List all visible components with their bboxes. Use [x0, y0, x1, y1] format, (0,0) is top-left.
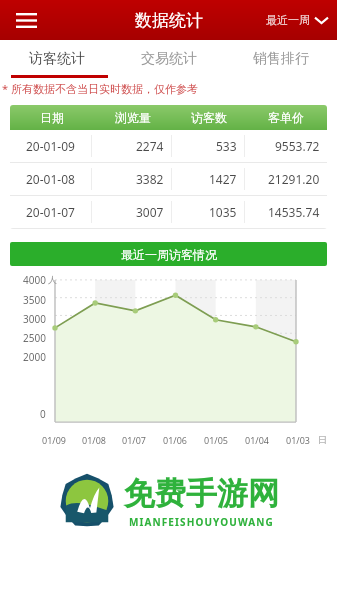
button[interactable]: 最近一周 [266, 13, 328, 27]
button[interactable]: 20-01-08 [10, 163, 327, 195]
staticText: 最近一周访客情况 [121, 247, 217, 262]
staticText: 访客统计 [29, 50, 85, 68]
staticText: 交易统计 [141, 50, 197, 68]
staticText: 2000 [23, 350, 46, 364]
staticText: 数据统计 [135, 10, 203, 31]
staticText: 浏览量 [115, 110, 151, 125]
staticText: 1427 [209, 171, 237, 187]
staticText: 01/04 [245, 434, 269, 446]
staticText: 20-01-09 [26, 138, 75, 154]
staticText: 日 [318, 434, 327, 445]
staticText: 客单价 [268, 110, 304, 125]
button[interactable]: Menu [8, 2, 44, 38]
staticText: 1035 [209, 204, 237, 220]
staticText: 20-01-07 [26, 204, 75, 220]
staticText: 3500 [23, 293, 46, 307]
staticText: 01/09 [42, 434, 66, 446]
staticText: 3007 [136, 204, 164, 220]
staticText: 人 [48, 274, 57, 285]
staticText: 3382 [136, 171, 164, 187]
staticText: 0 [40, 407, 46, 421]
staticText: 2500 [23, 331, 46, 345]
staticText: 01/06 [163, 434, 187, 446]
staticText: 20-01-08 [26, 171, 75, 187]
staticText: 01/03 [286, 434, 310, 446]
staticText: 免费手游网 [124, 474, 279, 513]
staticText: 4000 [23, 273, 46, 287]
staticText: 533 [216, 138, 237, 154]
staticText: * 所有数据不含当日实时数据，仅作参考 [2, 81, 198, 96]
staticText: 01/05 [204, 434, 228, 446]
button[interactable]: 访客统计 [0, 40, 113, 78]
staticText: 01/08 [82, 434, 106, 446]
staticText: 14535.74 [268, 204, 320, 220]
staticText: MIANFEISHOUYOUWANG [129, 515, 274, 529]
button[interactable]: 20-01-07 [10, 196, 327, 228]
staticText: 日期 [40, 110, 64, 125]
staticText: 01/07 [122, 434, 146, 446]
staticText: 2274 [136, 138, 164, 154]
staticText: 销售排行 [253, 50, 309, 68]
staticText: 最近一周 [266, 13, 310, 27]
button[interactable]: 20-01-09 [10, 130, 327, 162]
staticText: 21291.20 [268, 171, 320, 187]
button[interactable]: 交易统计 [113, 40, 225, 78]
button[interactable]: 最近一周访客情况 [10, 242, 327, 266]
button[interactable]: 销售排行 [225, 40, 337, 78]
staticText: 访客数 [191, 110, 227, 125]
staticText: 9553.72 [275, 138, 320, 154]
staticText: 3000 [23, 312, 46, 326]
